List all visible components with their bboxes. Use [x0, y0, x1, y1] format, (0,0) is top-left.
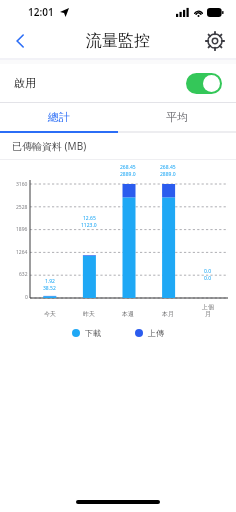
- staticText: 1.92: [45, 278, 55, 285]
- staticText: 啟用: [14, 76, 36, 90]
- staticText: 12:01: [28, 5, 54, 19]
- staticText: 1896: [16, 226, 28, 233]
- staticText: 3160: [16, 181, 28, 188]
- staticText: 632: [19, 271, 28, 278]
- staticText: 1123.0: [81, 222, 97, 229]
- staticText: 昨天: [83, 310, 95, 318]
- staticText: 平均: [166, 110, 188, 124]
- staticText: 本週: [122, 310, 134, 318]
- staticText: 0: [25, 294, 28, 301]
- staticText: 2528: [16, 204, 28, 211]
- staticText: 已傳輸資料 (MB): [12, 139, 87, 153]
- button[interactable]: Settings: [200, 26, 230, 56]
- button[interactable]: 下載: [72, 328, 101, 338]
- button[interactable]: 上傳: [135, 328, 164, 338]
- staticText: 268.45: [160, 164, 176, 171]
- button[interactable]: 總計: [0, 103, 118, 131]
- staticText: 流量監控: [86, 31, 150, 51]
- staticText: 0.0: [204, 268, 212, 275]
- staticText: 0.0: [204, 275, 212, 282]
- staticText: 2889.0: [160, 171, 176, 178]
- button[interactable]: 啟用: [0, 64, 236, 102]
- staticText: 1264: [16, 249, 28, 256]
- staticText: 本月: [162, 310, 174, 318]
- staticText: 今天: [44, 310, 56, 318]
- button[interactable]: 平均: [118, 103, 236, 131]
- staticText: 總計: [48, 110, 70, 124]
- staticText: 下載: [85, 328, 101, 338]
- staticText: 38.52: [43, 285, 56, 292]
- button[interactable]: Back: [6, 26, 36, 56]
- staticText: 2889.0: [120, 171, 136, 178]
- staticText: 上個 月: [202, 303, 214, 318]
- staticText: 268.45: [120, 164, 136, 171]
- staticText: 12.65: [83, 215, 96, 222]
- staticText: 上傳: [148, 328, 164, 338]
